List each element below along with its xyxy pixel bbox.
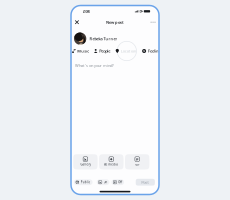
button[interactable]: Feeling [142,48,161,54]
button[interactable]: Post [136,179,155,186]
staticText: Off [118,180,122,184]
staticText: GIF [135,163,139,166]
staticText: Music [77,48,89,54]
staticText: New post [106,19,124,25]
staticText: What's on your mind? [75,63,114,68]
button[interactable]: Public [74,179,93,185]
button[interactable]: Close [71,17,83,28]
button[interactable]: More options [147,17,159,28]
staticText: 2:04 [83,9,90,14]
button[interactable]: Location [116,48,137,54]
staticText: Feeling [148,48,161,54]
staticText: On [104,180,108,184]
button[interactable]: Music [72,48,89,54]
button[interactable]: People [94,48,110,54]
button[interactable]: On [97,179,109,185]
staticText: AI media [104,163,118,166]
staticText: Gallery [80,163,90,166]
staticText: Rebeka Turner [89,36,117,41]
staticText: Location [121,48,137,54]
button[interactable]: Off [111,179,124,185]
button[interactable]: AI media [99,154,123,169]
button[interactable]: Gallery [73,154,98,169]
staticText: Public [81,180,90,184]
staticText: People [99,48,110,54]
staticText: Post [141,179,149,185]
button[interactable]: GIF [125,154,149,169]
